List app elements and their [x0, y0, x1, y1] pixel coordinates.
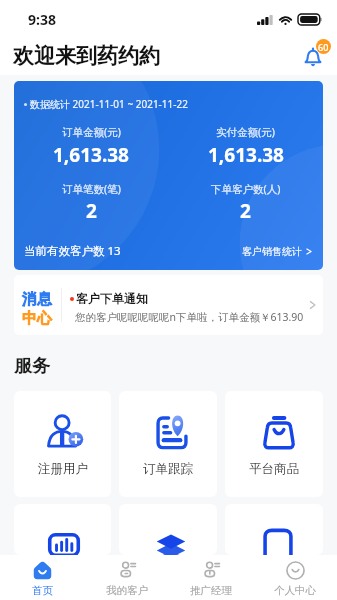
staticText: 个人中心 — [274, 584, 316, 597]
button[interactable]: 注册用户 — [14, 391, 111, 497]
button[interactable]: 数据统计 2021-11-01 ~ 2021-11-22 — [14, 81, 323, 270]
staticText: 平台商品 — [249, 461, 299, 477]
staticText: 订单笔数(笔) — [62, 182, 121, 196]
staticText: 数据统计 2021-11-01 ~ 2021-11-22 — [30, 97, 188, 111]
staticText: 客户下单通知 — [76, 291, 148, 306]
staticText: 60 — [318, 41, 329, 53]
button[interactable]: 推广经理 — [169, 555, 253, 600]
button[interactable]: 库存管理 — [119, 504, 217, 555]
staticText: 服务 — [14, 355, 50, 378]
staticText: 2 — [86, 198, 97, 224]
staticText: 9:38 — [28, 10, 56, 29]
staticText: 欢迎来到药约約 — [13, 43, 160, 69]
staticText: 我的客户 — [106, 584, 148, 597]
button[interactable]: 订单跟踪 — [119, 391, 217, 497]
staticText: 首页 — [32, 584, 53, 597]
staticText: 订单金额(元) — [62, 125, 121, 139]
staticText: 您的客户呢呢呢呢呢n下单啦，订单金额￥613.90 — [75, 310, 304, 324]
staticText: 2 — [240, 198, 251, 224]
staticText: 中心 — [22, 309, 52, 328]
staticText: 客户销售统计 — [242, 245, 302, 258]
staticText: 订单跟踪 — [143, 461, 193, 477]
staticText: 推广经理 — [190, 584, 232, 597]
button[interactable]: 平台商品 — [225, 391, 323, 497]
button[interactable]: 消息 — [14, 275, 323, 335]
button[interactable]: 控销产品 — [225, 504, 323, 555]
button[interactable]: 销售统计 — [14, 504, 111, 555]
button[interactable]: Notifications — [299, 40, 331, 72]
staticText: 下单客户数(人) — [211, 182, 281, 196]
staticText: 1,613.38 — [208, 142, 284, 168]
button[interactable]: 首页 — [0, 555, 85, 600]
staticText: 实付金额(元) — [216, 125, 275, 139]
staticText: 注册用户 — [38, 461, 88, 477]
button[interactable]: 我的客户 — [85, 555, 169, 600]
button[interactable]: 客户销售统计 — [242, 245, 312, 258]
button[interactable]: 个人中心 — [253, 555, 337, 600]
staticText: 当前有效客户数 13 — [24, 243, 121, 259]
staticText: 1,613.38 — [53, 142, 129, 168]
staticText: 消息 — [22, 290, 52, 309]
